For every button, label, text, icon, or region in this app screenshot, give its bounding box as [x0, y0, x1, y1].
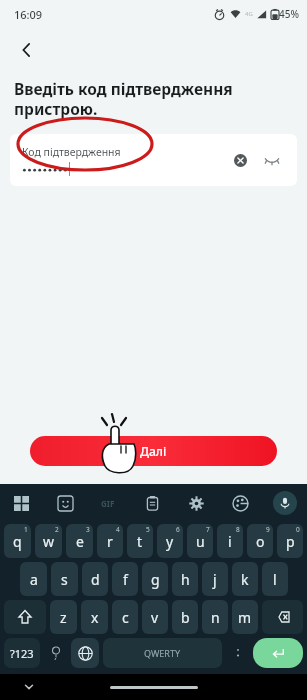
staticText: x	[91, 608, 99, 627]
button[interactable]: Change language	[71, 638, 99, 668]
staticText: n	[211, 608, 220, 627]
button[interactable]: n	[202, 600, 228, 634]
button[interactable]: Show password	[259, 147, 285, 173]
button[interactable]: c	[112, 600, 138, 634]
staticText: p	[286, 532, 295, 551]
button[interactable]: a	[20, 562, 47, 596]
button[interactable]: ?123	[4, 638, 40, 668]
staticText: z	[60, 608, 67, 627]
button[interactable]: Keyboard layouts	[10, 492, 32, 514]
staticText: f	[123, 570, 128, 589]
button[interactable]: Код підтвердження	[10, 134, 297, 186]
button[interactable]: u	[187, 524, 213, 558]
button[interactable]: x	[81, 600, 108, 634]
button[interactable]: Emoji and comma	[44, 638, 67, 668]
button[interactable]: z	[50, 600, 77, 634]
button[interactable]: Clipboard	[141, 492, 163, 514]
staticText: Введіть код підтвердження пристрою.	[14, 78, 233, 120]
button[interactable]: q	[4, 524, 31, 558]
staticText: a	[30, 570, 38, 589]
staticText: q	[13, 532, 22, 551]
button[interactable]: Backspace	[262, 600, 303, 634]
button[interactable]: Clear	[227, 147, 253, 173]
staticText: 4G	[245, 10, 253, 18]
button[interactable]: h	[172, 562, 198, 596]
button[interactable]: m	[232, 600, 258, 634]
staticText: 45%	[279, 7, 299, 21]
button[interactable]: b	[172, 600, 198, 634]
button[interactable]: Shift	[4, 600, 46, 634]
staticText: 6	[176, 525, 180, 534]
staticText: t	[137, 532, 143, 551]
button[interactable]: j	[202, 562, 228, 596]
staticText: u	[196, 532, 205, 551]
button[interactable]: Stickers	[54, 492, 76, 514]
staticText: 16:09	[14, 7, 43, 22]
staticText: 8	[236, 525, 240, 534]
staticText: 1	[24, 525, 28, 534]
staticText: l	[273, 570, 277, 589]
staticText: h	[181, 570, 190, 589]
button[interactable]: i	[217, 524, 243, 558]
button[interactable]: o	[247, 524, 273, 558]
staticText: r	[107, 532, 113, 551]
button[interactable]: Voice input	[273, 491, 297, 515]
button[interactable]: s	[51, 562, 78, 596]
button[interactable]: f	[112, 562, 138, 596]
staticText: Далі	[140, 443, 167, 459]
button[interactable]: Back	[10, 28, 44, 72]
button[interactable]: Enter	[253, 638, 303, 668]
button[interactable]: QWERTY	[103, 638, 222, 668]
staticText: 5	[146, 525, 150, 534]
button[interactable]: t	[127, 524, 153, 558]
button[interactable]: l	[262, 562, 288, 596]
staticText: i	[228, 532, 232, 551]
staticText: 7	[206, 525, 210, 534]
button[interactable]: Period	[226, 638, 249, 668]
button[interactable]: y	[157, 524, 183, 558]
button[interactable]: v	[142, 600, 168, 634]
staticText: y	[166, 532, 174, 551]
staticText: g	[151, 570, 160, 589]
staticText: QWERTY	[144, 647, 181, 659]
button[interactable]: Далі	[30, 436, 277, 466]
button[interactable]: w	[35, 524, 62, 558]
staticText: 3	[86, 525, 90, 534]
button[interactable]: r	[97, 524, 123, 558]
staticText: j	[213, 570, 217, 589]
staticText: m	[238, 608, 252, 627]
staticText: 0	[296, 525, 300, 534]
staticText: GIF	[101, 498, 115, 509]
button[interactable]: Settings	[185, 492, 207, 514]
button[interactable]: e	[66, 524, 93, 558]
staticText: Код підтвердження	[22, 145, 121, 159]
button[interactable]: k	[232, 562, 258, 596]
button[interactable]: d	[82, 562, 108, 596]
staticText: c	[122, 608, 129, 627]
staticText: e	[76, 532, 84, 551]
button[interactable]: g	[142, 562, 168, 596]
staticText: w	[43, 532, 55, 551]
staticText: b	[181, 608, 190, 627]
staticText: o	[256, 532, 265, 551]
staticText: ?123	[10, 646, 34, 661]
staticText: v	[151, 608, 159, 627]
staticText: 4	[116, 525, 120, 534]
staticText: k	[241, 570, 249, 589]
staticText: 2	[55, 525, 59, 534]
button[interactable]: Themes	[229, 492, 251, 514]
button[interactable]: p	[277, 524, 303, 558]
staticText: s	[61, 570, 68, 589]
staticText: 9	[266, 525, 270, 534]
staticText: d	[91, 570, 100, 589]
button[interactable]: GIF	[98, 493, 118, 513]
